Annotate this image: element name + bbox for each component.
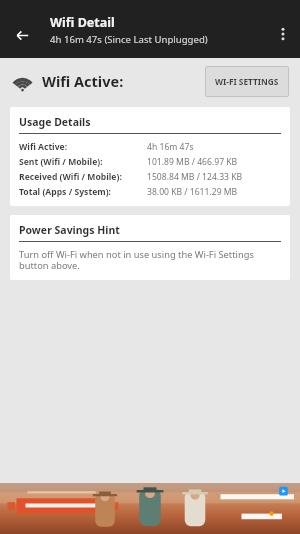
staticText: Wifi Active:	[42, 71, 124, 91]
staticText: Wifi Active:	[19, 141, 147, 153]
staticText: Total (Apps / System):	[19, 186, 147, 198]
button[interactable]: Advertisement: The Grand Tour on Amazon …	[0, 483, 300, 534]
staticText: Sent (Wifi / Mobile):	[19, 156, 147, 168]
staticText: 101.89 MB / 466.97 KB	[147, 156, 238, 168]
staticText: Power Savings Hint	[19, 223, 120, 237]
staticText: 4h 16m 47s	[147, 141, 194, 153]
staticText: 38.00 KB / 1611.29 MB	[147, 186, 238, 198]
staticText: WI-FI SETTINGS	[215, 76, 279, 87]
staticText: Usage Details	[19, 115, 91, 129]
staticText: Wifi Detail	[50, 14, 115, 31]
button[interactable]: Back	[6, 19, 38, 51]
staticText: 4h 16m 47s (Since Last Unplugged)	[50, 33, 208, 46]
staticText: Turn off Wi-Fi when not in use using the…	[19, 248, 281, 272]
button[interactable]: More options	[268, 19, 298, 49]
button[interactable]: WI-FI SETTINGS	[205, 66, 289, 97]
staticText: 1508.84 MB / 124.33 KB	[147, 171, 243, 183]
staticText: Received (Wifi / Mobile):	[19, 171, 147, 183]
